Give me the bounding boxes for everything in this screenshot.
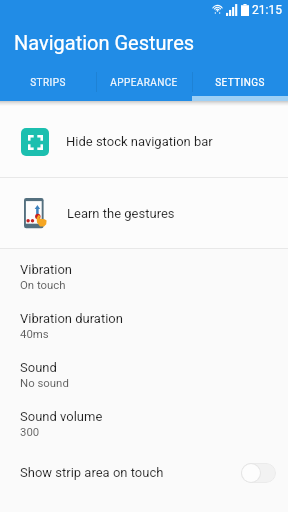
button[interactable]: Learn the gestures (0, 178, 288, 248)
button[interactable]: Show strip area on touch (0, 448, 288, 497)
staticText: Sound (20, 360, 57, 375)
staticText: Navigation Gestures (14, 31, 195, 54)
staticText: No sound (20, 376, 69, 389)
staticText: STRIPS (30, 77, 66, 89)
staticText: 40ms (20, 327, 49, 340)
staticText: Hide stock navigation bar (66, 134, 213, 149)
staticText: APPEARANCE (110, 77, 178, 89)
staticText: SETTINGS (215, 77, 265, 89)
staticText: Show strip area on touch (20, 465, 164, 480)
other: Learn the gestures (24, 198, 51, 229)
button[interactable]: Sound (0, 350, 288, 399)
button[interactable]: SETTINGS (192, 63, 288, 101)
staticText: Vibration duration (20, 311, 123, 326)
staticText: Sound volume (20, 409, 103, 424)
other: Hide stock navigation bar (21, 128, 49, 156)
button[interactable]: Sound volume (0, 399, 288, 448)
button[interactable]: APPEARANCE (96, 63, 192, 101)
staticText: Learn the gestures (67, 206, 175, 221)
staticText: 300 (20, 425, 40, 438)
button[interactable]: STRIPS (0, 63, 96, 101)
staticText: Vibration (20, 262, 72, 277)
staticText: 21:15 (252, 3, 282, 17)
button[interactable]: Vibration duration (0, 301, 288, 350)
button[interactable]: Vibration (0, 252, 288, 301)
button[interactable]: Hide stock navigation bar (0, 101, 288, 177)
staticText: On touch (20, 278, 66, 291)
